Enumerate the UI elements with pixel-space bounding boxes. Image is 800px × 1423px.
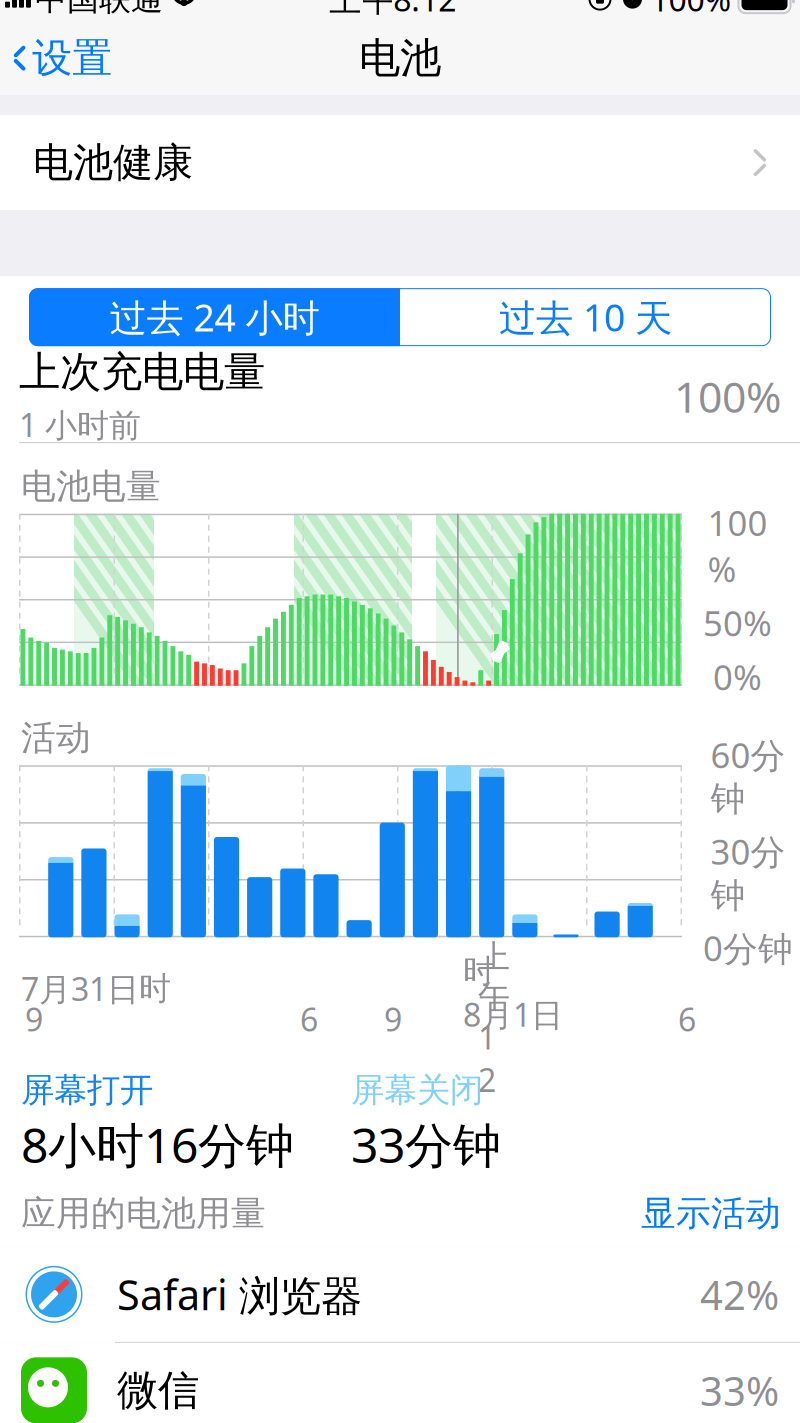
staticText: 微信: [117, 1365, 199, 1416]
staticText: 50%: [703, 600, 772, 646]
staticText: 过去 10 天: [499, 292, 672, 342]
staticText: 上午12: [478, 937, 510, 1101]
staticText: 时: [139, 969, 171, 1008]
staticText: 100%: [674, 368, 781, 424]
staticText: 0%: [713, 654, 762, 700]
button[interactable]: 过去 24 小时: [29, 288, 400, 346]
staticText: 时: [463, 952, 495, 991]
staticText: 0分钟: [703, 925, 793, 971]
staticText: 电池: [359, 33, 441, 84]
staticText: 1 小时前: [19, 403, 141, 446]
staticText: 上次充电电量: [19, 346, 265, 397]
staticText: 42%: [700, 1268, 779, 1321]
staticText: 33分钟: [351, 1112, 501, 1176]
staticText: 8月1日: [463, 993, 563, 1036]
staticText: 屏幕关闭: [351, 1070, 483, 1110]
staticText: 电池电量: [21, 465, 161, 508]
staticText: 应用的电池用量: [21, 1192, 266, 1235]
staticText: 显示活动: [641, 1192, 781, 1235]
staticText: 9: [384, 998, 402, 1040]
staticText: 100%: [650, 0, 731, 20]
staticText: 6: [300, 998, 318, 1040]
staticText: 9: [25, 998, 43, 1040]
button[interactable]: 微信: [0, 1343, 800, 1423]
staticText: 8小时16分钟: [21, 1112, 294, 1176]
staticText: 屏幕打开: [21, 1070, 153, 1110]
staticText: 60分钟: [710, 732, 785, 820]
button[interactable]: Safari 浏览器: [0, 1247, 800, 1343]
staticText: 7月31日: [21, 967, 139, 1010]
staticText: 设置: [32, 34, 112, 83]
button[interactable]: 设置: [0, 28, 122, 88]
button[interactable]: 过去 10 天: [400, 288, 771, 346]
staticText: Safari 浏览器: [117, 1267, 362, 1322]
staticText: 6: [678, 998, 696, 1040]
staticText: 过去 24 小时: [109, 292, 319, 342]
staticText: 活动: [21, 717, 91, 759]
staticText: 30分钟: [710, 828, 785, 917]
staticText: 33%: [700, 1364, 779, 1417]
staticText: 电池健康: [33, 138, 193, 187]
staticText: 100%: [707, 500, 767, 592]
staticText: 上午8:12: [329, 0, 456, 20]
staticText: 中国联通: [35, 0, 163, 19]
button[interactable]: 显示活动: [641, 1192, 781, 1235]
button[interactable]: 电池健康: [0, 115, 800, 210]
